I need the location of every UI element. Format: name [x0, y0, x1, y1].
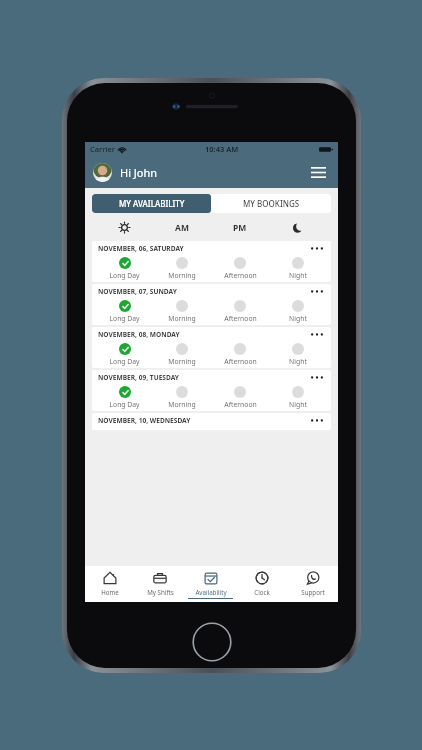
- button[interactable]: Afternoon: [211, 256, 269, 282]
- button[interactable]: Long Day: [96, 299, 153, 325]
- staticText: My Shifts: [147, 588, 174, 596]
- staticText: Clock: [254, 588, 270, 596]
- staticText: Availability: [195, 588, 227, 596]
- staticText: MY BOOKINGS: [243, 198, 300, 209]
- button[interactable]: NOVEMBER, 07, SUNDAY: [92, 284, 331, 325]
- staticText: Morning: [168, 357, 196, 366]
- staticText: NOVEMBER, 09, TUESDAY: [98, 373, 179, 382]
- button[interactable]: Long Day: [96, 256, 153, 282]
- staticText: Afternoon: [224, 271, 257, 280]
- button[interactable]: Menu: [306, 160, 330, 184]
- staticText: Night: [289, 271, 307, 280]
- button[interactable]: AM: [153, 217, 211, 238]
- button[interactable]: MY AVAILABILITY: [92, 194, 211, 213]
- staticText: Afternoon: [224, 357, 257, 366]
- button[interactable]: Support: [287, 566, 338, 602]
- button[interactable]: Long day: [96, 217, 153, 238]
- staticText: Long Day: [109, 314, 140, 323]
- button[interactable]: Night: [269, 342, 327, 368]
- button[interactable]: NOVEMBER, 08, MONDAY: [92, 327, 331, 368]
- button[interactable]: Morning: [153, 342, 211, 368]
- staticText: Long Day: [109, 400, 140, 409]
- button[interactable]: Morning: [153, 256, 211, 282]
- button[interactable]: Night: [269, 217, 327, 238]
- staticText: Long Day: [109, 357, 140, 366]
- button[interactable]: Profile photo: [93, 163, 112, 182]
- staticText: Long Day: [109, 271, 140, 280]
- staticText: Night: [289, 400, 307, 409]
- staticText: Morning: [168, 271, 196, 280]
- button[interactable]: More options: [309, 371, 325, 384]
- staticText: Hi John: [120, 165, 158, 180]
- button[interactable]: Long Day: [96, 342, 153, 368]
- button[interactable]: More options: [309, 285, 325, 298]
- staticText: AM: [175, 222, 189, 234]
- button[interactable]: Night: [269, 256, 327, 282]
- staticText: Support: [301, 588, 325, 596]
- staticText: 10:43 AM: [205, 144, 239, 154]
- button[interactable]: Home: [85, 566, 135, 602]
- button[interactable]: Afternoon: [211, 385, 269, 411]
- staticText: Afternoon: [224, 314, 257, 323]
- staticText: NOVEMBER, 06, SATURDAY: [98, 244, 184, 253]
- button[interactable]: Morning: [153, 299, 211, 325]
- button[interactable]: Clock: [236, 566, 287, 602]
- staticText: Night: [289, 357, 307, 366]
- button[interactable]: NOVEMBER, 10, WEDNESDAY: [92, 413, 331, 430]
- button[interactable]: Afternoon: [211, 299, 269, 325]
- button[interactable]: MY BOOKINGS: [211, 194, 331, 213]
- button[interactable]: PM: [211, 217, 269, 238]
- staticText: Carrier: [90, 144, 115, 154]
- staticText: MY AVAILABILITY: [119, 198, 185, 209]
- button[interactable]: NOVEMBER, 06, SATURDAY: [92, 241, 331, 282]
- staticText: Morning: [168, 400, 196, 409]
- staticText: PM: [233, 222, 247, 234]
- button[interactable]: Availability: [185, 566, 236, 602]
- button[interactable]: My Shifts: [135, 566, 185, 602]
- staticText: NOVEMBER, 07, SUNDAY: [98, 287, 177, 296]
- button[interactable]: Night: [269, 385, 327, 411]
- staticText: Night: [289, 314, 307, 323]
- button[interactable]: Afternoon: [211, 342, 269, 368]
- button[interactable]: Night: [269, 299, 327, 325]
- button[interactable]: More options: [309, 242, 325, 255]
- staticText: Morning: [168, 314, 196, 323]
- staticText: Home: [101, 588, 119, 596]
- button[interactable]: Morning: [153, 385, 211, 411]
- staticText: NOVEMBER, 10, WEDNESDAY: [98, 416, 191, 425]
- button[interactable]: More options: [309, 414, 325, 427]
- staticText: NOVEMBER, 08, MONDAY: [98, 330, 180, 339]
- button[interactable]: Long Day: [96, 385, 153, 411]
- button[interactable]: NOVEMBER, 09, TUESDAY: [92, 370, 331, 411]
- staticText: Afternoon: [224, 400, 257, 409]
- button[interactable]: More options: [309, 328, 325, 341]
